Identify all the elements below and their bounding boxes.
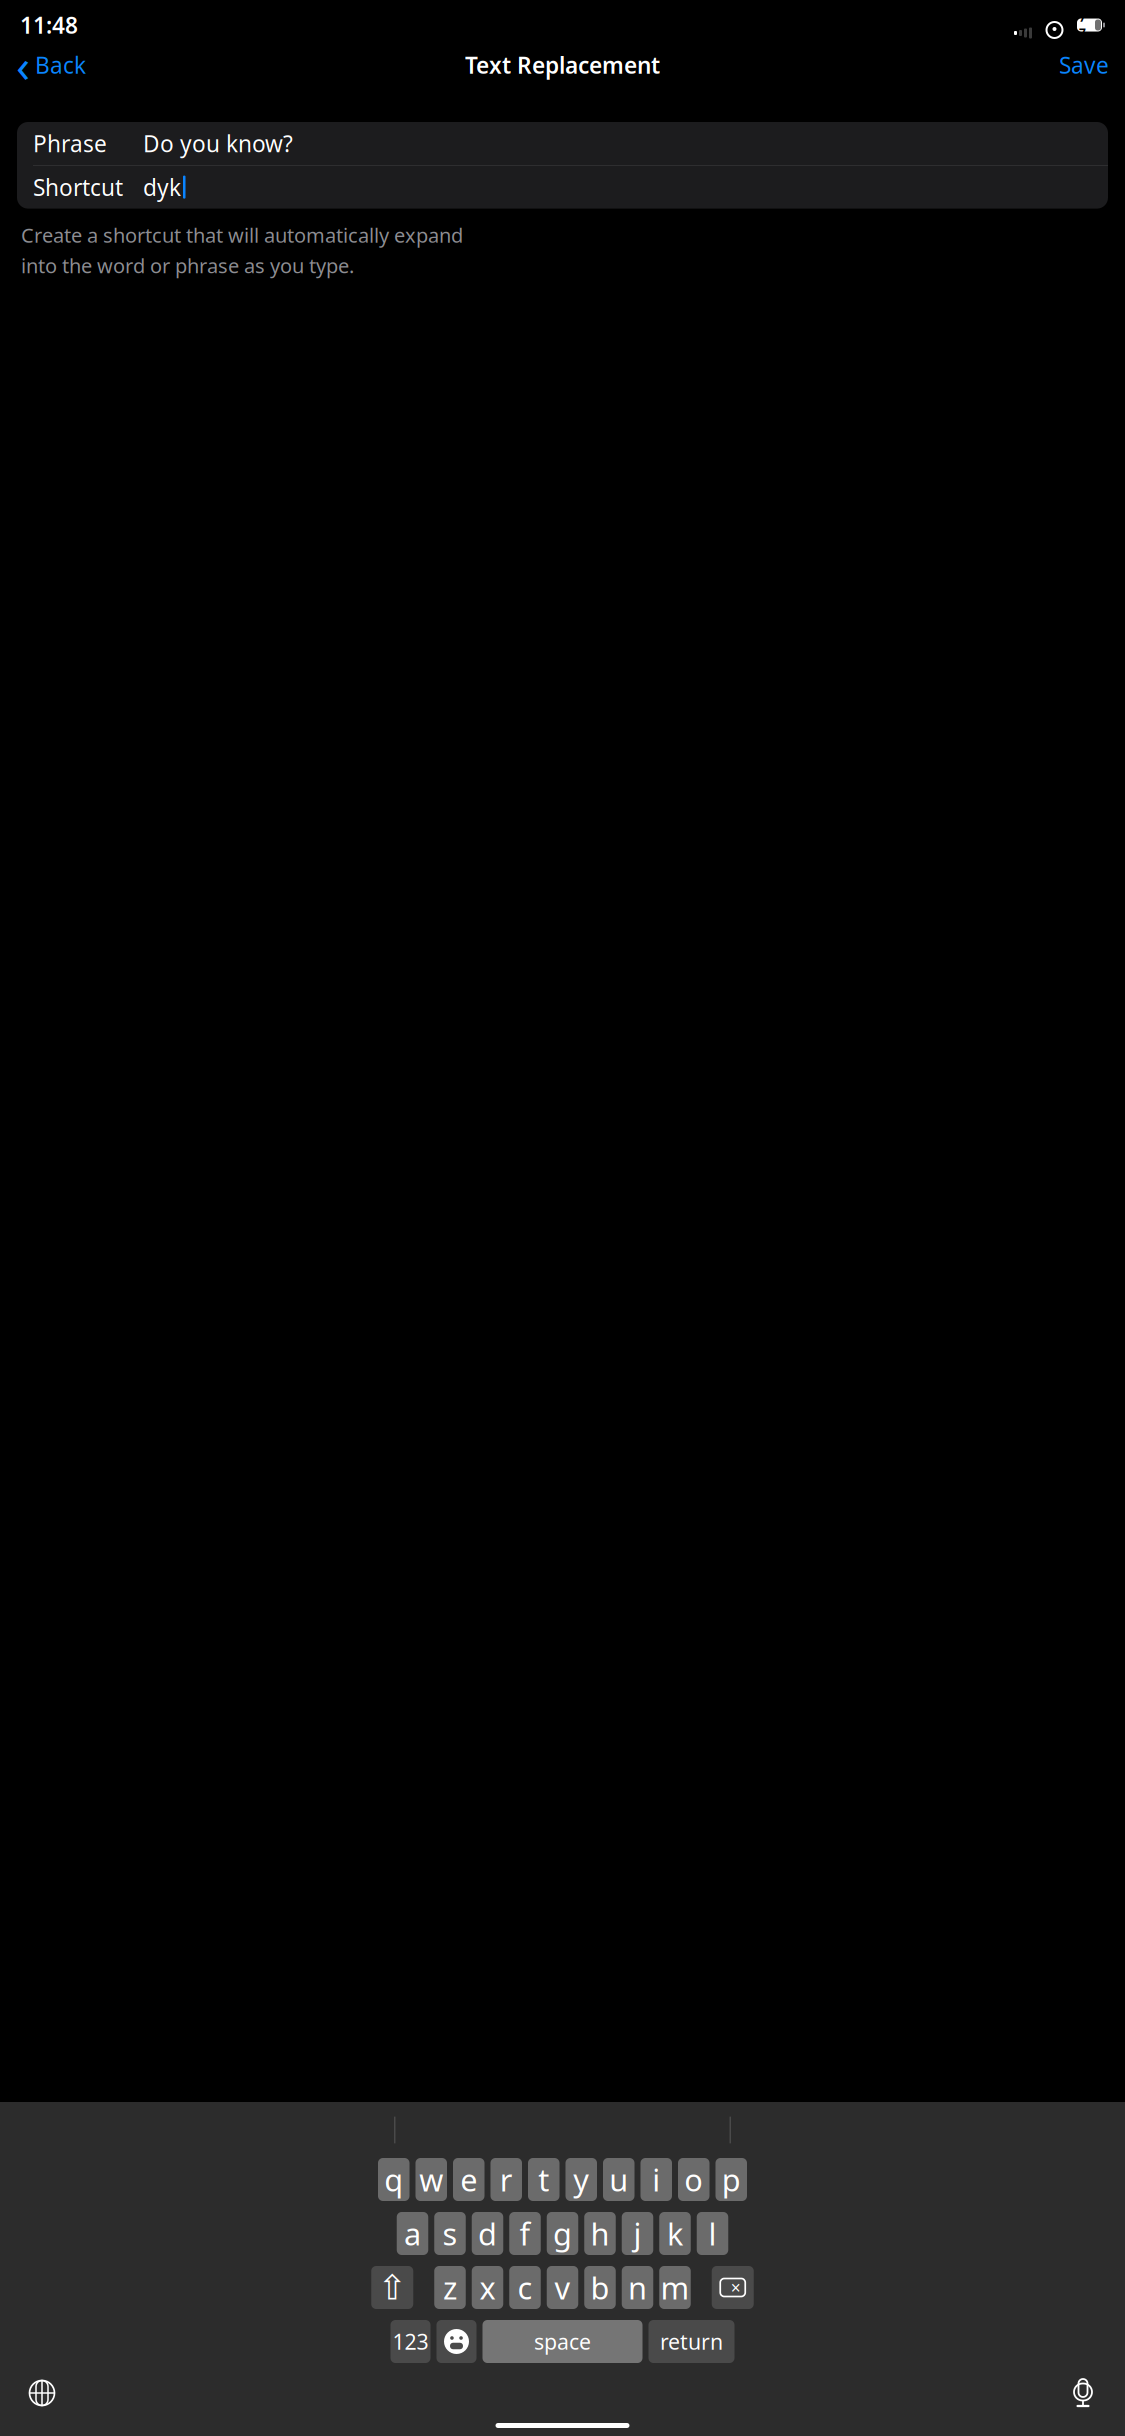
staticText: a: [404, 2213, 421, 2254]
button[interactable]: return: [648, 2320, 734, 2363]
staticText: dyk: [143, 172, 181, 202]
button[interactable]: z: [434, 2266, 466, 2309]
staticText: v: [554, 2267, 570, 2308]
button[interactable]: u: [603, 2158, 634, 2201]
staticText: k: [667, 2213, 683, 2254]
button[interactable]: l: [697, 2212, 728, 2255]
staticText: Back: [35, 50, 86, 80]
button[interactable]: Shortcut: [17, 166, 1108, 209]
staticText: n: [628, 2267, 647, 2308]
button[interactable]: r: [490, 2158, 522, 2201]
button[interactable]: o: [678, 2158, 709, 2201]
staticText: Save: [1059, 50, 1109, 80]
button[interactable]: Dictation: [1061, 2371, 1105, 2415]
staticText: b: [590, 2267, 609, 2308]
staticText: Text Replacement: [465, 50, 660, 80]
staticText: l: [708, 2213, 716, 2254]
staticText: h: [590, 2213, 609, 2254]
staticText: r: [500, 2159, 513, 2200]
button[interactable]: x: [472, 2266, 503, 2309]
button[interactable]: Delete: [712, 2266, 754, 2309]
button[interactable]: m: [659, 2266, 691, 2309]
button[interactable]: g: [547, 2212, 578, 2255]
staticText: x: [479, 2267, 495, 2308]
staticText: c: [517, 2267, 532, 2308]
staticText: Shortcut: [33, 172, 123, 202]
button[interactable]: b: [584, 2266, 616, 2309]
button[interactable]: v: [547, 2266, 578, 2309]
staticText: t: [538, 2159, 549, 2200]
button[interactable]: s: [434, 2212, 466, 2255]
button[interactable]: Phrase: [17, 122, 1108, 165]
staticText: space: [534, 2327, 591, 2356]
staticText: Phrase: [33, 128, 107, 158]
button[interactable]: h: [584, 2212, 616, 2255]
button[interactable]: ‹: [12, 30, 90, 100]
staticText: u: [609, 2159, 628, 2200]
staticText: into the word or phrase as you type.: [21, 252, 354, 279]
button[interactable]: w: [415, 2158, 447, 2201]
button[interactable]: 123: [390, 2320, 430, 2363]
staticText: return: [660, 2327, 723, 2356]
button[interactable]: Emoji: [436, 2320, 476, 2363]
staticText: e: [460, 2159, 477, 2200]
button[interactable]: Shift: [371, 2266, 413, 2309]
staticText: s: [442, 2213, 457, 2254]
button[interactable]: p: [715, 2158, 747, 2201]
button[interactable]: space: [482, 2320, 642, 2363]
button[interactable]: i: [640, 2158, 672, 2201]
staticText: ⇧: [378, 2268, 407, 2307]
staticText: p: [722, 2159, 741, 2200]
staticText: z: [443, 2267, 457, 2308]
staticText: y: [573, 2159, 589, 2200]
button[interactable]: e: [453, 2158, 484, 2201]
staticText: ×: [731, 2276, 741, 2299]
button[interactable]: n: [622, 2266, 653, 2309]
staticText: 123: [392, 2327, 428, 2356]
staticText: i: [652, 2159, 660, 2200]
button[interactable]: Next keyboard: [20, 2371, 64, 2415]
staticText: 77: [1079, 9, 1086, 41]
button[interactable]: t: [528, 2158, 559, 2201]
button[interactable]: a: [397, 2212, 428, 2255]
staticText: ‹: [16, 35, 30, 95]
staticText: 11:48: [20, 10, 78, 40]
staticText: d: [478, 2213, 497, 2254]
staticText: q: [384, 2159, 403, 2200]
staticText: Do you know?: [143, 128, 293, 158]
button[interactable]: k: [659, 2212, 691, 2255]
button[interactable]: y: [565, 2158, 597, 2201]
button[interactable]: j: [622, 2212, 653, 2255]
staticText: m: [660, 2267, 689, 2308]
staticText: g: [553, 2213, 572, 2254]
button[interactable]: f: [509, 2212, 541, 2255]
button[interactable]: q: [378, 2158, 409, 2201]
button[interactable]: Save: [1055, 45, 1113, 85]
staticText: f: [519, 2213, 530, 2254]
staticText: o: [684, 2159, 703, 2200]
staticText: j: [633, 2213, 641, 2254]
button[interactable]: d: [472, 2212, 503, 2255]
button[interactable]: c: [509, 2266, 541, 2309]
staticText: w: [419, 2159, 443, 2200]
staticText: Create a shortcut that will automaticall…: [21, 222, 463, 248]
